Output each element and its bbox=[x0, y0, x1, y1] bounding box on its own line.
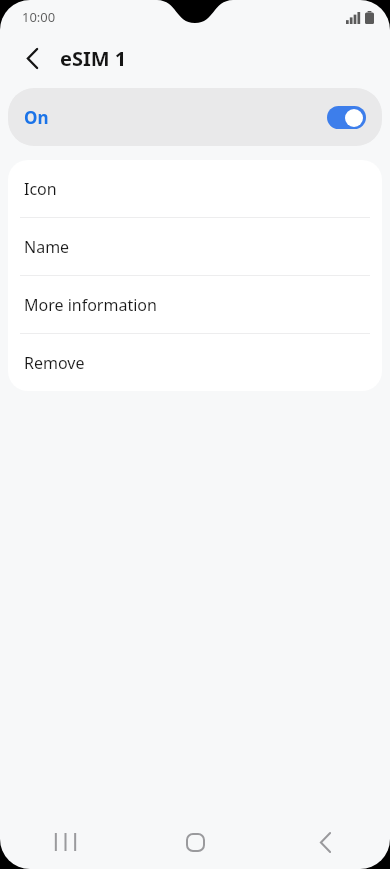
staticText: Name bbox=[24, 236, 70, 258]
button[interactable]: More information bbox=[8, 276, 382, 333]
button[interactable]: Recent apps bbox=[0, 815, 130, 869]
button[interactable]: Icon bbox=[8, 160, 382, 217]
other: Toggle eSIM bbox=[327, 106, 366, 129]
staticText: eSIM 1 bbox=[60, 45, 127, 72]
button[interactable]: Back bbox=[260, 815, 390, 869]
button[interactable]: Name bbox=[8, 218, 382, 275]
button[interactable]: On bbox=[8, 88, 382, 146]
staticText: Remove bbox=[24, 352, 85, 374]
button[interactable]: Remove bbox=[8, 334, 382, 391]
staticText: Icon bbox=[24, 178, 57, 200]
button[interactable]: Home bbox=[130, 815, 260, 869]
staticText: More information bbox=[24, 294, 157, 316]
staticText: 10:00 bbox=[22, 8, 56, 26]
staticText: On bbox=[24, 106, 49, 129]
button[interactable]: Back bbox=[12, 38, 52, 78]
